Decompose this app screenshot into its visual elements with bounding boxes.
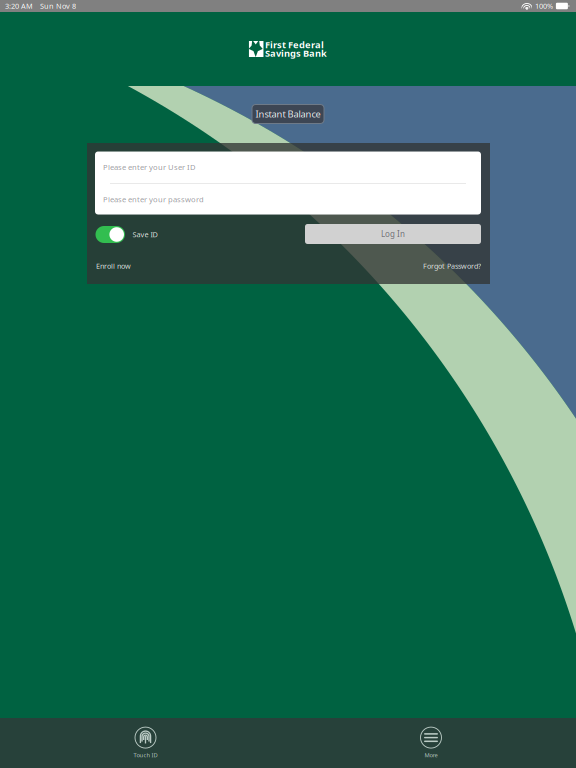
- button[interactable]: Enroll now: [96, 259, 156, 273]
- staticText: Please enter your password: [103, 194, 204, 205]
- button[interactable]: More: [400, 725, 462, 761]
- button[interactable]: Save ID: [95, 225, 175, 244]
- staticText: More: [424, 751, 437, 759]
- staticText: Log In: [381, 229, 405, 239]
- staticText: 100%: [535, 1, 553, 11]
- staticText: Touch ID: [133, 751, 157, 759]
- staticText: 3:20 AM: [5, 1, 33, 11]
- staticText: Please enter your User ID: [103, 162, 196, 172]
- button[interactable]: Forgot Password?: [401, 259, 481, 273]
- staticText: Savings Bank: [265, 47, 327, 60]
- staticText: Forgot Password?: [423, 261, 481, 271]
- button[interactable]: Touch ID: [114, 725, 176, 761]
- staticText: Sun Nov 8: [40, 1, 76, 11]
- staticText: First Federal: [265, 38, 324, 51]
- staticText: Instant Balance: [255, 108, 320, 120]
- staticText: Save ID: [132, 229, 157, 239]
- button[interactable]: Log In: [305, 224, 481, 244]
- staticText: Enroll now: [96, 261, 131, 271]
- button[interactable]: Instant Balance: [252, 104, 324, 123]
